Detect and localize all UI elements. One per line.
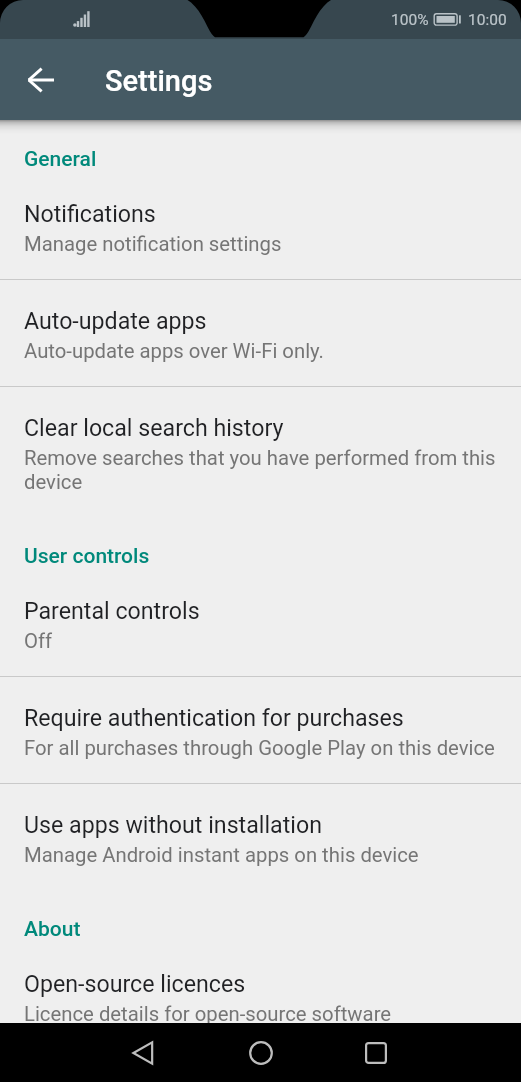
staticText: Off: [24, 629, 53, 653]
staticText: Parental controls: [24, 598, 200, 625]
button[interactable]: Back: [120, 1029, 168, 1077]
button[interactable]: Notifications: [0, 173, 521, 279]
staticText: Clear local search history: [24, 415, 284, 442]
staticText: 10:00: [468, 11, 507, 29]
button[interactable]: Home: [237, 1029, 285, 1077]
staticText: About: [24, 917, 81, 941]
staticText: Auto-update apps over Wi-Fi only.: [24, 339, 324, 363]
staticText: Use apps without installation: [24, 812, 322, 839]
staticText: Require authentication for purchases: [24, 705, 404, 732]
button[interactable]: Recent apps: [352, 1029, 400, 1077]
staticText: For all purchases through Google Play on…: [24, 736, 495, 760]
button[interactable]: Open-source licences: [0, 943, 521, 1049]
staticText: Open-source licences: [24, 971, 246, 998]
staticText: Manage Android instant apps on this devi…: [24, 843, 419, 867]
staticText: Notifications: [24, 201, 156, 228]
button[interactable]: Navigate up: [17, 56, 65, 104]
staticText: General: [24, 147, 97, 171]
staticText: Manage notification settings: [24, 232, 282, 256]
staticText: Remove searches that you have performed …: [24, 446, 497, 494]
staticText: User controls: [24, 544, 150, 568]
button[interactable]: Use apps without installation: [0, 784, 521, 890]
staticText: 100%: [391, 11, 429, 29]
button[interactable]: Parental controls: [0, 570, 521, 676]
button[interactable]: Require authentication for purchases: [0, 677, 521, 783]
staticText: Licence details for open-source software: [24, 1002, 392, 1026]
button[interactable]: Clear local search history: [0, 387, 521, 517]
staticText: Auto-update apps: [24, 308, 207, 335]
button[interactable]: Auto-update apps: [0, 280, 521, 386]
staticText: Settings: [105, 64, 213, 98]
